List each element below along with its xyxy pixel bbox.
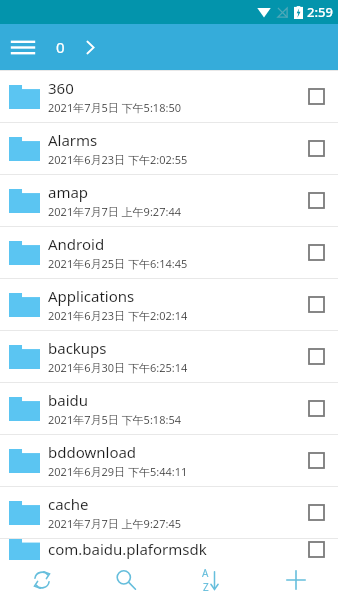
staticText: A — [202, 566, 209, 580]
button[interactable]: Menu — [0, 24, 46, 70]
staticText: 2021年6月29日 下午5:44:11 — [48, 464, 188, 479]
button[interactable]: cache — [0, 487, 338, 538]
button[interactable]: Android — [0, 227, 338, 278]
staticText: 2021年7月5日 下午5:18:54 — [48, 412, 181, 427]
staticText: 2021年6月23日 下午2:02:14 — [48, 308, 188, 323]
button[interactable]: 0 — [46, 29, 75, 65]
button[interactable]: Add — [253, 560, 338, 600]
staticText: backups — [48, 338, 107, 358]
button[interactable]: Applications — [0, 279, 338, 330]
staticText: Z — [203, 580, 209, 594]
button[interactable]: Select amap — [294, 175, 338, 226]
button[interactable]: Refresh — [0, 560, 84, 600]
button[interactable]: Alarms — [0, 123, 338, 174]
button[interactable]: Forward — [75, 24, 105, 70]
button[interactable]: amap — [0, 175, 338, 226]
staticText: 2021年6月30日 下午6:25:14 — [48, 360, 188, 375]
staticText: cache — [48, 494, 89, 514]
staticText: 2021年6月25日 下午6:14:45 — [48, 256, 188, 271]
staticText: 0 — [56, 37, 65, 57]
staticText: baidu — [48, 390, 89, 410]
staticText: Alarms — [48, 130, 98, 150]
button[interactable]: Select bddownload — [294, 435, 338, 486]
button[interactable]: baidu — [0, 383, 338, 434]
button[interactable]: Search — [84, 560, 168, 600]
staticText: 2021年7月5日 下午5:18:50 — [48, 100, 181, 115]
button[interactable]: Select baidu — [294, 383, 338, 434]
button[interactable]: com.baidu.plaformsdk — [0, 539, 338, 560]
staticText: Applications — [48, 286, 135, 306]
button[interactable]: Select cache — [294, 487, 338, 538]
button[interactable]: Select Android — [294, 227, 338, 278]
staticText: 2:59 — [307, 3, 333, 21]
staticText: amap — [48, 182, 89, 202]
button[interactable]: Select 360 — [294, 71, 338, 122]
button[interactable]: backups — [0, 331, 338, 382]
button[interactable]: bddownload — [0, 435, 338, 486]
button[interactable]: Sort — [168, 560, 253, 600]
button[interactable]: Select backups — [294, 331, 338, 382]
staticText: Android — [48, 234, 105, 254]
button[interactable]: Select Alarms — [294, 123, 338, 174]
staticText: 2021年6月23日 下午2:02:55 — [48, 152, 188, 167]
button[interactable]: Select Applications — [294, 279, 338, 330]
staticText: 2021年7月7日 上午9:27:44 — [48, 204, 181, 219]
staticText: com.baidu.plaformsdk — [48, 539, 207, 559]
staticText: 2021年7月7日 上午9:27:45 — [48, 516, 181, 531]
staticText: bddownload — [48, 442, 137, 462]
button[interactable]: Select com.baidu.plaformsdk — [294, 539, 338, 560]
staticText: 360 — [48, 78, 74, 98]
button[interactable]: 360 — [0, 71, 338, 122]
